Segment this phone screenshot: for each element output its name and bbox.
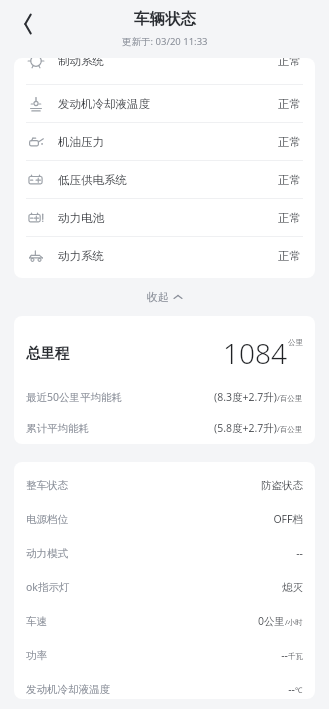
- staticText: --: [281, 648, 288, 662]
- staticText: 累计平均能耗: [26, 422, 89, 435]
- staticText: 整车状态: [26, 479, 68, 492]
- staticText: 发动机冷却液温度: [26, 683, 110, 696]
- staticText: 最近50公里平均能耗: [26, 390, 123, 404]
- staticText: ℃: [295, 685, 303, 695]
- button[interactable]: 功率: [26, 646, 303, 664]
- staticText: 电源档位: [26, 513, 68, 526]
- staticText: 正常: [278, 58, 301, 68]
- staticText: 动力模式: [26, 547, 68, 560]
- staticText: 动力系统: [58, 249, 104, 263]
- staticText: 机油压力: [58, 135, 104, 149]
- button[interactable]: 动力模式: [26, 544, 303, 562]
- staticText: 防盗状态: [261, 479, 303, 492]
- staticText: ok指示灯: [26, 580, 70, 594]
- staticText: 收起: [147, 290, 169, 304]
- button[interactable]: 机油压力: [14, 123, 315, 161]
- staticText: 1084: [223, 334, 287, 372]
- button[interactable]: ok指示灯: [26, 578, 303, 596]
- button[interactable]: 车速: [26, 612, 303, 630]
- staticText: 正常: [278, 211, 301, 225]
- button[interactable]: 发动机冷却液温度: [26, 680, 303, 698]
- staticText: 正常: [278, 135, 301, 149]
- button[interactable]: Back: [10, 6, 46, 42]
- staticText: 正常: [278, 173, 301, 187]
- button[interactable]: 发动机冷却液温度: [14, 85, 315, 123]
- staticText: 车速: [26, 615, 47, 628]
- staticText: --: [296, 546, 303, 560]
- staticText: 发动机冷却液温度: [58, 97, 150, 111]
- staticText: 车辆状态: [134, 9, 196, 29]
- button[interactable]: 低压供电系统: [14, 161, 315, 199]
- button[interactable]: 整车状态: [26, 476, 303, 494]
- button[interactable]: 动力电池: [14, 199, 315, 237]
- staticText: /百公里: [277, 393, 303, 403]
- staticText: 功率: [26, 649, 47, 662]
- staticText: 制动系统: [58, 58, 104, 68]
- staticText: 总里程: [26, 344, 70, 362]
- staticText: 公里: [288, 338, 303, 347]
- staticText: 0公里: [257, 614, 285, 628]
- staticText: 更新于: 03/20 11:33: [122, 35, 208, 48]
- button[interactable]: 累计平均能耗: [26, 419, 303, 437]
- button[interactable]: 收起: [0, 278, 329, 316]
- staticText: 正常: [278, 97, 301, 111]
- staticText: OFF档: [273, 512, 303, 526]
- staticText: (5.8度+2.7升): [214, 421, 277, 435]
- staticText: /百公里: [277, 424, 303, 434]
- staticText: 千瓦: [288, 652, 303, 661]
- staticText: 正常: [278, 249, 301, 263]
- staticText: 动力电池: [58, 211, 104, 225]
- staticText: 熄灭: [282, 581, 303, 594]
- staticText: (8.3度+2.7升): [214, 390, 277, 404]
- staticText: /小时: [285, 617, 303, 627]
- button[interactable]: 最近50公里平均能耗: [26, 388, 303, 406]
- button[interactable]: 动力系统: [14, 237, 315, 274]
- button[interactable]: 电源档位: [26, 510, 303, 528]
- staticText: 低压供电系统: [58, 173, 127, 187]
- staticText: --: [288, 682, 295, 696]
